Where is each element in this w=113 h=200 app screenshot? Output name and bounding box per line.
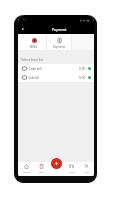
button[interactable]: Me xyxy=(79,162,94,176)
button[interactable]: Bills xyxy=(34,162,49,176)
staticText: Payments xyxy=(53,45,66,49)
staticText: Me xyxy=(85,170,89,173)
staticText: 9:41 xyxy=(22,18,28,22)
staticText: Job bill xyxy=(29,76,40,80)
button[interactable]: Payments xyxy=(47,34,71,50)
staticText: Bills xyxy=(39,170,44,173)
staticText: Select from list xyxy=(21,58,44,62)
staticText: Help xyxy=(69,170,75,173)
staticText: 0.00 xyxy=(79,76,86,80)
button[interactable]: Job bill xyxy=(18,73,94,82)
staticText: Wallet xyxy=(30,45,38,49)
button[interactable]: Home xyxy=(18,162,34,176)
button[interactable]: Back xyxy=(19,25,27,33)
button[interactable]: Cash bill xyxy=(18,64,94,73)
staticText: Payment xyxy=(52,27,67,32)
staticText: Cash bill xyxy=(29,67,42,71)
button[interactable]: Wallet xyxy=(22,34,46,50)
button[interactable]: Help xyxy=(64,162,79,176)
button[interactable]: Add xyxy=(51,158,62,172)
staticText: Home xyxy=(23,170,30,173)
staticText: 0.00 xyxy=(79,67,86,71)
